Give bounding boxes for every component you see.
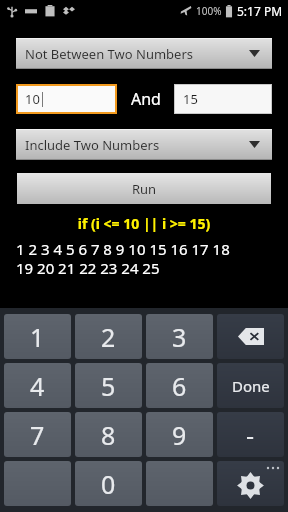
button[interactable]: 3 (146, 314, 213, 359)
staticText: Include Two Numbers (25, 136, 160, 154)
staticText: 5:17 PM (237, 3, 283, 19)
staticText: - (246, 418, 255, 452)
staticText: 6 (172, 369, 187, 403)
button[interactable]: 6 (146, 363, 213, 408)
staticText: Run (132, 180, 157, 198)
staticText: Not Between Two Numbers (25, 45, 194, 63)
button[interactable]: Not Between Two Numbers (16, 38, 272, 69)
button[interactable]: 15 (175, 85, 271, 113)
staticText: 10 (25, 90, 40, 108)
staticText: 15 (183, 90, 198, 108)
staticText: 7 (30, 418, 45, 452)
button[interactable]: Backspace (217, 314, 284, 359)
staticText: 1 2 3 4 5 6 7 8 9 10 15 16 17 18 19 20 2… (16, 239, 288, 278)
staticText: Done (232, 376, 270, 396)
button[interactable]: Minus (217, 412, 284, 457)
button[interactable]: Settings (217, 461, 284, 506)
button[interactable]: 8 (75, 412, 142, 457)
button[interactable]: 5 (75, 363, 142, 408)
button[interactable]: 9 (146, 412, 213, 457)
staticText: 8 (101, 418, 116, 452)
staticText: 100% (196, 4, 222, 18)
button[interactable]: 0 (75, 461, 142, 506)
staticText: And (131, 88, 161, 110)
staticText: if (i <= 10 || i >= 15) (0, 214, 288, 233)
button[interactable]: Done (217, 363, 284, 408)
button[interactable]: 1 (4, 314, 71, 359)
staticText: 9 (172, 418, 187, 452)
button[interactable]: 4 (4, 363, 71, 408)
staticText: 2 (101, 320, 116, 354)
staticText: 0 (101, 467, 116, 501)
button[interactable]: Include Two Numbers (16, 129, 272, 160)
button[interactable]: 2 (75, 314, 142, 359)
staticText: 3 (172, 320, 187, 354)
button[interactable]: Run (17, 173, 271, 204)
staticText: 1 (30, 320, 45, 354)
button[interactable]: 7 (4, 412, 71, 457)
button[interactable]: 10 (18, 86, 115, 112)
staticText: 4 (30, 369, 45, 403)
staticText: 5 (101, 369, 116, 403)
